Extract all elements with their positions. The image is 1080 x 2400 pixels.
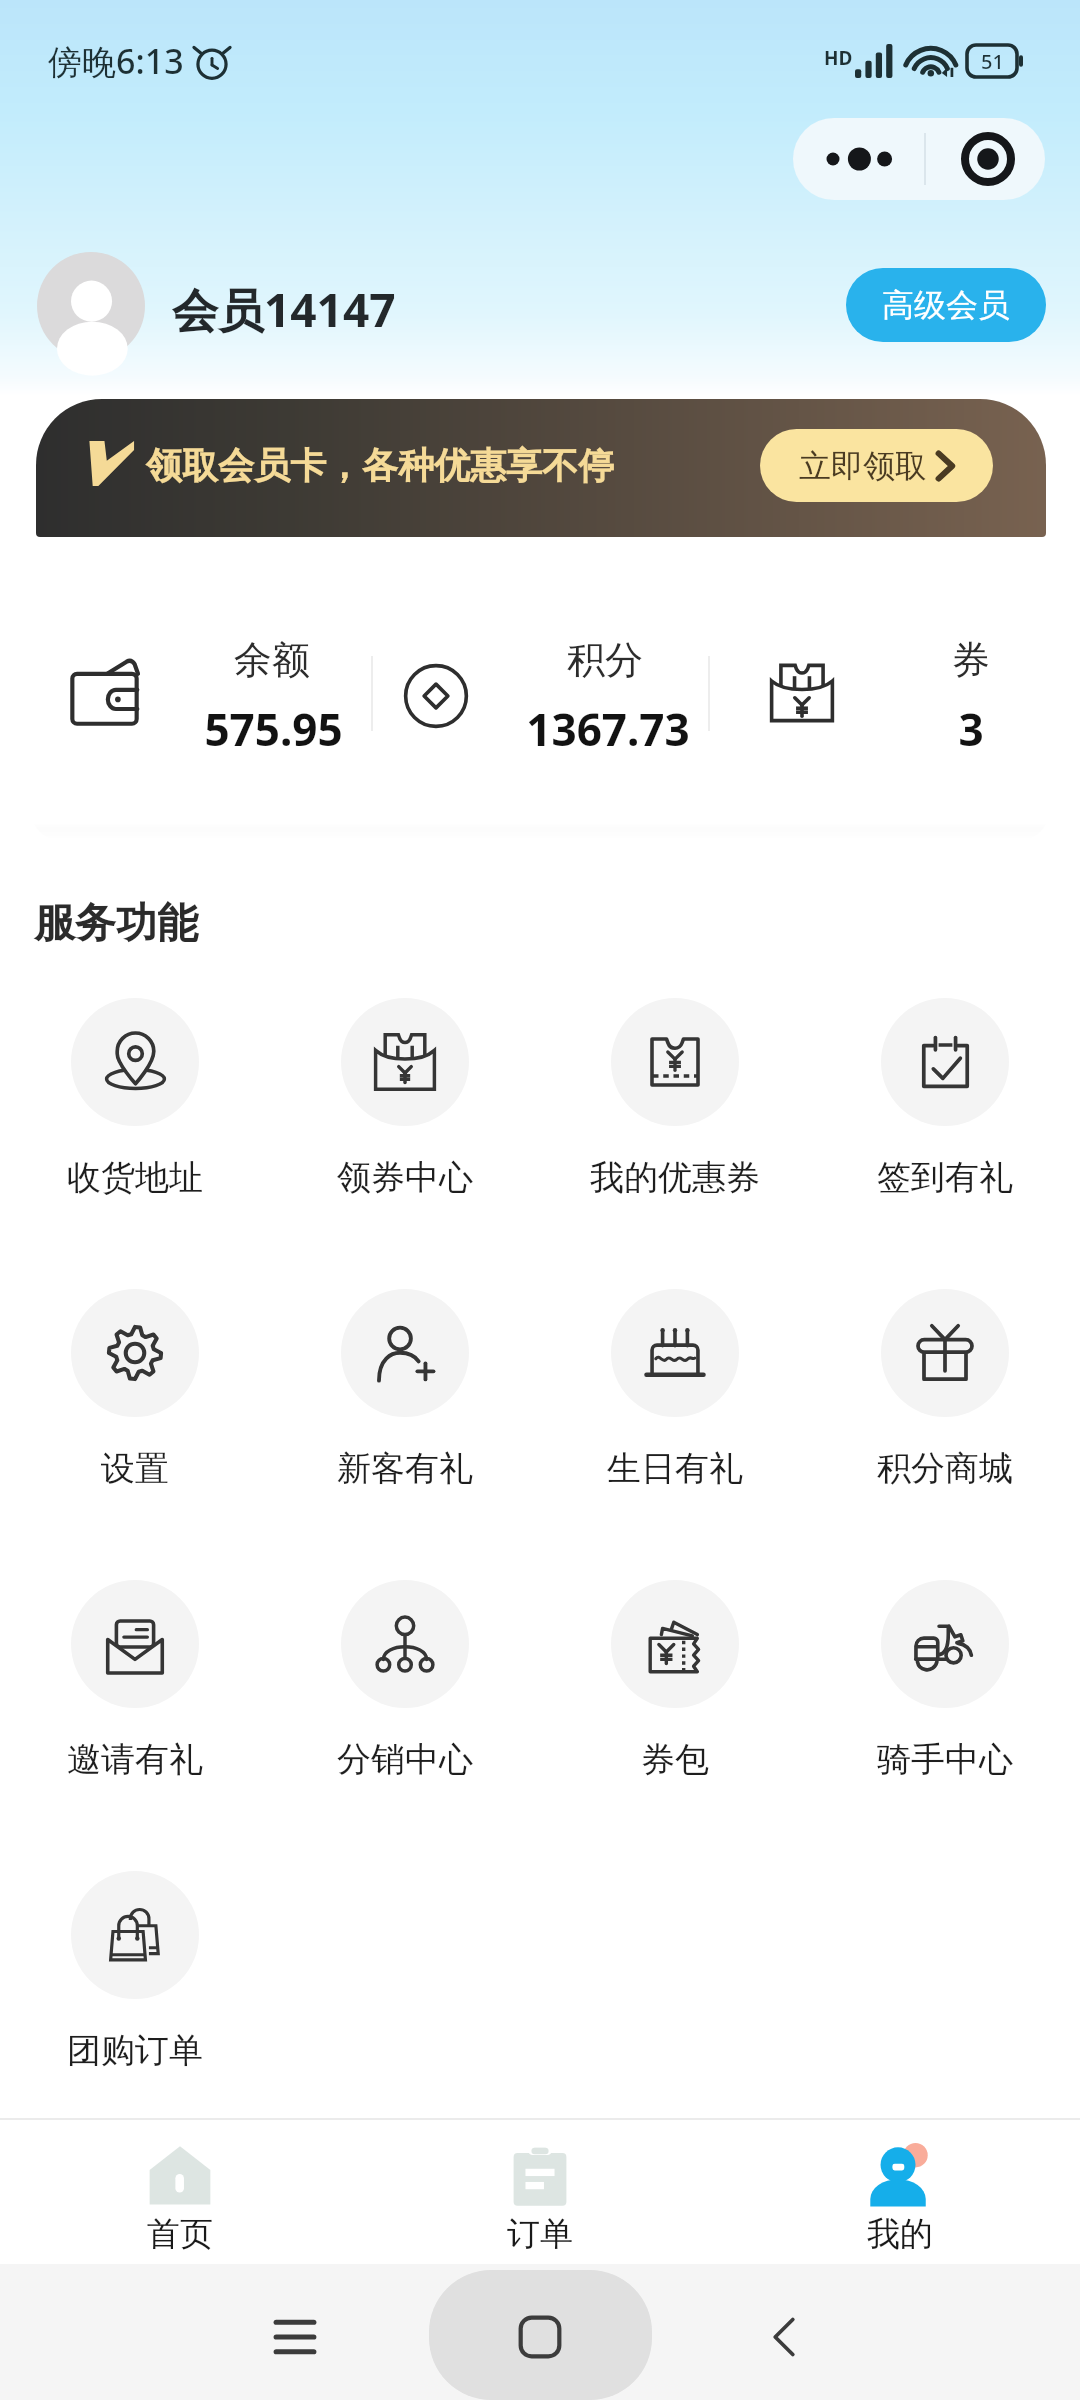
staticText: 领券中心 xyxy=(337,1156,473,1199)
staticText: 575.95 xyxy=(204,699,343,759)
staticText: 傍晚6:13 xyxy=(48,38,184,84)
button[interactable]: Back xyxy=(729,2282,839,2392)
button[interactable]: 签到有礼 xyxy=(810,998,1080,1199)
staticText: 余额 xyxy=(234,636,310,684)
staticText: 1367.73 xyxy=(526,699,690,759)
staticText: 新客有礼 xyxy=(337,1447,473,1490)
staticText: 邀请有礼 xyxy=(67,1738,203,1781)
staticText: 立即领取 xyxy=(799,446,927,486)
staticText: 我的优惠券 xyxy=(590,1156,760,1199)
button[interactable]: 生日有礼 xyxy=(540,1289,810,1490)
button[interactable]: 领取会员卡，各种优惠享不停 xyxy=(36,399,1046,537)
button[interactable]: 券 3 xyxy=(712,600,1042,818)
staticText: 51 xyxy=(981,48,1004,75)
staticText: HD xyxy=(824,45,853,71)
button[interactable]: 立即领取 xyxy=(760,429,993,502)
button[interactable]: 设置 xyxy=(0,1289,270,1490)
staticText: 生日有礼 xyxy=(607,1447,743,1490)
staticText: 骑手中心 xyxy=(877,1738,1013,1781)
button[interactable]: 分销中心 xyxy=(270,1580,540,1781)
staticText: 设置 xyxy=(101,1447,169,1490)
button[interactable]: 团购订单 xyxy=(0,1871,270,2072)
staticText: 券包 xyxy=(641,1738,709,1781)
staticText: 我的 xyxy=(867,2213,933,2255)
button[interactable]: More options xyxy=(793,118,924,200)
staticText: 会员14147 xyxy=(172,278,396,341)
button[interactable]: 邀请有礼 xyxy=(0,1580,270,1781)
button[interactable]: 新客有礼 xyxy=(270,1289,540,1490)
button[interactable]: 首页 xyxy=(0,2130,360,2255)
staticText: 服务功能 xyxy=(34,898,198,950)
staticText: 签到有礼 xyxy=(877,1156,1013,1199)
staticText: 积分 xyxy=(567,636,643,684)
staticText: 积分商城 xyxy=(877,1447,1013,1490)
staticText: 订单 xyxy=(507,2213,573,2255)
button[interactable]: Home xyxy=(485,2282,595,2392)
button[interactable]: 券包 xyxy=(540,1580,810,1781)
button[interactable]: 积分商城 xyxy=(810,1289,1080,1490)
staticText: 首页 xyxy=(147,2213,213,2255)
staticText: 收货地址 xyxy=(67,1156,203,1199)
button[interactable]: 收货地址 xyxy=(0,998,270,1199)
button[interactable]: 我的 xyxy=(720,2130,1080,2255)
button[interactable]: 骑手中心 xyxy=(810,1580,1080,1781)
button[interactable]: 领券中心 xyxy=(270,998,540,1199)
staticText: 券 xyxy=(952,636,990,684)
button[interactable]: Close mini program xyxy=(924,118,1045,200)
staticText: 团购订单 xyxy=(67,2029,203,2072)
button[interactable]: Recent apps xyxy=(240,2282,350,2392)
staticText: 分销中心 xyxy=(337,1738,473,1781)
staticText: 高级会员 xyxy=(882,285,1010,325)
staticText: 领取会员卡，各种优惠享不停 xyxy=(146,443,614,488)
button[interactable]: 积分 1367.73 xyxy=(374,600,706,818)
button[interactable]: 高级会员 xyxy=(846,268,1046,342)
button[interactable]: 我的优惠券 xyxy=(540,998,810,1199)
button[interactable]: 订单 xyxy=(360,2130,720,2255)
button[interactable]: 余额 575.95 xyxy=(40,600,370,818)
staticText: 3 xyxy=(958,699,984,759)
